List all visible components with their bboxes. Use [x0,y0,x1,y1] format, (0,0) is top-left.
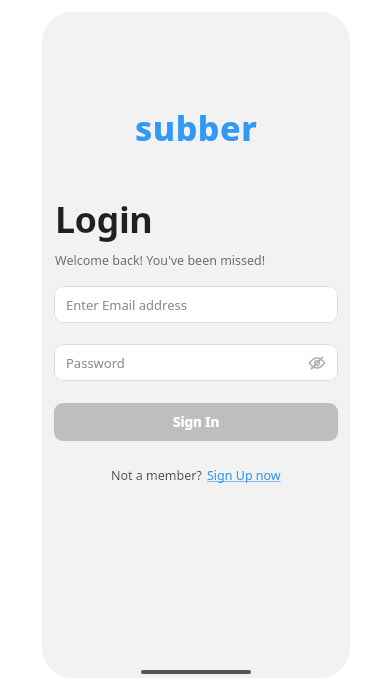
staticText: Welcome back! You've been missed! [55,252,266,269]
staticText: Sign Up now [207,467,281,484]
button[interactable]: Sign Up now [207,467,281,484]
staticText: subber [135,105,258,151]
staticText: Sign In [173,413,220,431]
staticText: Enter Email address [66,296,187,314]
staticText: Not a member? [111,467,202,484]
staticText: Login [55,195,153,244]
staticText: Password [66,354,125,372]
button[interactable]: Sign In [54,403,338,441]
button[interactable]: Show password [304,350,330,376]
button[interactable]: Enter Email address [54,286,338,323]
button[interactable]: Password [54,344,338,381]
